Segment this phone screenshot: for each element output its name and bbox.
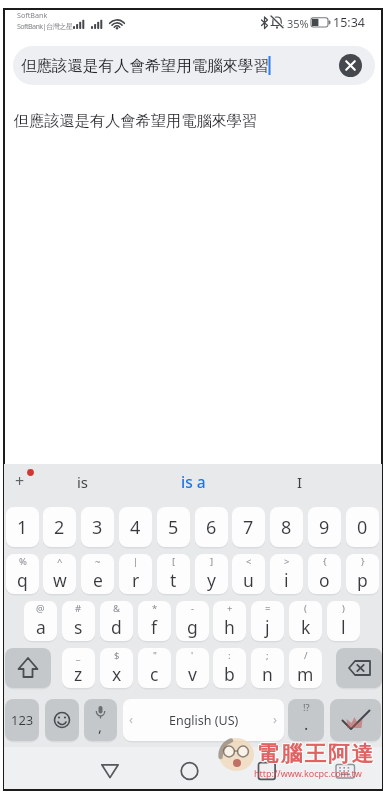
staticText: a (36, 615, 46, 639)
staticText: x (112, 662, 122, 686)
button[interactable]: 4 (119, 507, 152, 547)
button[interactable]: ~ (81, 554, 114, 594)
button[interactable]: $ (100, 648, 133, 688)
button[interactable] (5, 648, 51, 688)
staticText: > (284, 555, 290, 568)
button[interactable]: [ (157, 554, 190, 594)
staticText: 電腦王阿達 (258, 740, 377, 766)
button[interactable]: 7 (232, 507, 265, 547)
button[interactable]: | (119, 554, 152, 594)
button[interactable]: * (138, 601, 171, 641)
button[interactable]: _ (62, 648, 95, 688)
button[interactable] (325, 750, 367, 788)
staticText: q (17, 568, 28, 592)
staticText: s (74, 615, 83, 639)
button[interactable]: # (62, 601, 95, 641)
button[interactable]: 5 (157, 507, 190, 547)
staticText: z (74, 662, 83, 686)
staticText: SoftBank|台灣之星 (17, 21, 73, 31)
button[interactable]: 1 (6, 507, 39, 547)
staticText: r (132, 568, 140, 592)
staticText: p (357, 568, 368, 592)
button[interactable]: = (251, 601, 284, 641)
staticText: 123 (11, 711, 34, 729)
staticText: , (98, 716, 103, 736)
staticText: is a (181, 471, 206, 492)
staticText: b (224, 662, 235, 686)
staticText: m (297, 662, 314, 686)
staticText: = (265, 602, 271, 615)
staticText: l (341, 615, 346, 639)
staticText: y (207, 568, 216, 592)
staticText: http://www.kocpc.com.tw (254, 767, 362, 779)
button[interactable]: 3 (81, 507, 114, 547)
staticText: & (113, 602, 120, 615)
staticText: 但應該還是有人會希望用電腦來學習 (21, 56, 269, 76)
button[interactable]: } (346, 554, 379, 594)
button[interactable]: < (232, 554, 265, 594)
button[interactable]: , (84, 699, 117, 741)
staticText: | (133, 555, 139, 568)
button[interactable]: - (176, 601, 209, 641)
button[interactable]: ; (251, 648, 284, 688)
staticText: 7 (243, 515, 254, 540)
button[interactable]: ] (195, 554, 228, 594)
staticText: i (284, 568, 289, 592)
button[interactable]: & (100, 601, 133, 641)
button[interactable] (85, 750, 135, 788)
staticText: n (262, 662, 273, 686)
button[interactable] (165, 750, 215, 788)
button[interactable]: ( (289, 601, 322, 641)
button[interactable] (242, 750, 292, 788)
staticText: 9 (319, 515, 330, 540)
button[interactable]: !? (288, 699, 324, 741)
staticText: ] (210, 555, 214, 568)
button[interactable]: 9 (308, 507, 341, 547)
staticText: / (304, 649, 308, 662)
staticText: o (319, 568, 330, 592)
button[interactable]: 2 (43, 507, 76, 547)
button[interactable]: 123 (5, 699, 39, 741)
staticText: e (93, 568, 103, 592)
button[interactable]: 0 (346, 507, 379, 547)
staticText: h (224, 615, 235, 639)
staticText: + (15, 470, 25, 492)
button[interactable]: 8 (270, 507, 303, 547)
staticText: k (301, 615, 311, 639)
staticText: g (187, 615, 198, 639)
staticText: ‹ (129, 710, 134, 728)
button[interactable]: > (270, 554, 303, 594)
staticText: + (227, 602, 233, 615)
staticText: # (75, 602, 82, 615)
staticText: 0 (357, 515, 368, 540)
staticText: < (246, 555, 252, 568)
button[interactable]: 但應該還是有人會希望用電腦來學習 (13, 46, 375, 85)
button[interactable]: 6 (195, 507, 228, 547)
button[interactable]: / (289, 648, 322, 688)
button[interactable]: ' (176, 648, 209, 688)
staticText: 8 (281, 515, 292, 540)
button[interactable]: { (308, 554, 341, 594)
button[interactable]: + (213, 601, 246, 641)
button[interactable]: : (213, 648, 246, 688)
staticText: * (152, 602, 158, 615)
staticText: is (77, 472, 89, 490)
staticText: !? (303, 701, 310, 714)
button[interactable]: @ (24, 601, 57, 641)
button[interactable]: ) (327, 601, 360, 641)
button[interactable]: " (138, 648, 171, 688)
button[interactable]: + (8, 466, 48, 496)
button[interactable]: ^ (43, 554, 76, 594)
button[interactable] (336, 648, 382, 688)
button[interactable]: English (US) (123, 699, 284, 741)
staticText: : (228, 649, 231, 662)
button[interactable] (330, 699, 381, 741)
button[interactable] (45, 699, 79, 741)
button[interactable]: is a (150, 470, 236, 492)
staticText: 電腦王阿達 (258, 741, 377, 767)
staticText: v (188, 662, 197, 686)
staticText: 但應該還是有人會希望用電腦來學習 (14, 111, 257, 130)
staticText: SoftBank (17, 10, 48, 20)
button[interactable]: % (6, 554, 39, 594)
staticText: f (151, 615, 158, 639)
